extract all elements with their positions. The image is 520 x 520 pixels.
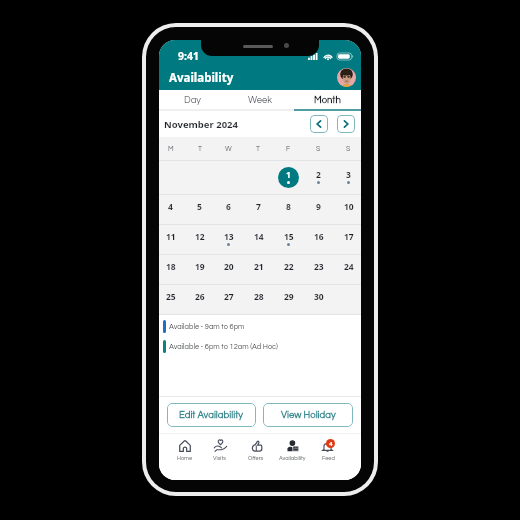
- button[interactable]: 19: [189, 259, 210, 280]
- staticText: 29: [284, 291, 294, 303]
- staticText: 3: [346, 169, 351, 181]
- staticText: 21: [254, 261, 264, 273]
- staticText: 15: [284, 231, 294, 243]
- staticText: 27: [224, 291, 234, 303]
- button[interactable]: 29: [278, 289, 299, 310]
- button[interactable]: 15: [278, 229, 299, 250]
- button[interactable]: Profile: [337, 68, 356, 87]
- button[interactable]: Available - 9am to 6pm: [159, 319, 361, 334]
- button[interactable]: Edit Availability: [167, 403, 256, 427]
- staticText: 28: [254, 291, 264, 303]
- button[interactable]: Month: [294, 90, 361, 109]
- button[interactable]: 2: [308, 167, 329, 188]
- button[interactable]: 12: [189, 229, 210, 250]
- button[interactable]: 25: [160, 289, 181, 310]
- staticText: Day: [184, 95, 202, 105]
- staticText: 9:41: [178, 49, 199, 63]
- staticText: M: [168, 145, 174, 152]
- button[interactable]: 22: [278, 259, 299, 280]
- staticText: Availability: [169, 70, 234, 86]
- button[interactable]: 26: [189, 289, 210, 310]
- button[interactable]: 9: [308, 199, 329, 220]
- button[interactable]: Next month: [337, 115, 355, 133]
- button[interactable]: 18: [160, 259, 181, 280]
- button[interactable]: Availability: [274, 434, 310, 480]
- button[interactable]: 4: [310, 434, 346, 480]
- button[interactable]: Visits: [202, 434, 238, 480]
- staticText: F: [286, 145, 291, 152]
- staticText: Available - 9am to 6pm: [169, 323, 245, 331]
- button[interactable]: 23: [308, 259, 329, 280]
- button[interactable]: 4: [160, 199, 181, 220]
- button[interactable]: 8: [278, 199, 299, 220]
- staticText: View Holiday: [281, 410, 336, 420]
- staticText: 1: [286, 169, 291, 181]
- button[interactable]: Available - 6pm to 12am (Ad Hoc): [159, 339, 361, 354]
- button[interactable]: 10: [338, 199, 359, 220]
- staticText: Offers: [248, 455, 264, 461]
- button[interactable]: 20: [218, 259, 239, 280]
- button[interactable]: 3: [338, 167, 359, 188]
- button[interactable]: 27: [218, 289, 239, 310]
- staticText: 20: [224, 261, 234, 273]
- staticText: 6: [226, 201, 231, 213]
- staticText: 12: [195, 231, 205, 243]
- button[interactable]: 13: [218, 229, 239, 250]
- button[interactable]: 17: [338, 229, 359, 250]
- button[interactable]: 5: [189, 199, 210, 220]
- staticText: Week: [248, 95, 273, 105]
- staticText: 5: [197, 201, 202, 213]
- staticText: 13: [224, 231, 234, 243]
- button[interactable]: 21: [248, 259, 269, 280]
- staticText: 7: [256, 201, 261, 213]
- staticText: S: [346, 145, 351, 152]
- staticText: 16: [314, 231, 324, 243]
- button[interactable]: 28: [248, 289, 269, 310]
- button[interactable]: 6: [218, 199, 239, 220]
- staticText: Availability: [279, 455, 306, 461]
- staticText: Available - 6pm to 12am (Ad Hoc): [169, 343, 278, 351]
- staticText: 10: [344, 201, 354, 213]
- staticText: S: [316, 145, 321, 152]
- staticText: Feed: [322, 455, 335, 461]
- button[interactable]: 1: [278, 167, 299, 188]
- staticText: 19: [195, 261, 205, 273]
- button[interactable]: 7: [248, 199, 269, 220]
- staticText: 2: [316, 169, 321, 181]
- button[interactable]: Offers: [238, 434, 274, 480]
- button[interactable]: 14: [248, 229, 269, 250]
- staticText: T: [198, 145, 202, 152]
- staticText: 4: [329, 440, 333, 448]
- staticText: 4: [168, 201, 173, 213]
- staticText: 26: [195, 291, 205, 303]
- staticText: 14: [254, 231, 264, 243]
- staticText: 23: [314, 261, 324, 273]
- staticText: Edit Availability: [179, 410, 244, 420]
- button[interactable]: 16: [308, 229, 329, 250]
- staticText: Month: [314, 95, 341, 105]
- staticText: Visits: [213, 455, 227, 461]
- button[interactable]: 11: [160, 229, 181, 250]
- staticText: 25: [166, 291, 176, 303]
- staticText: November 2024: [164, 118, 238, 131]
- button[interactable]: View Holiday: [263, 403, 353, 427]
- button[interactable]: Day: [159, 90, 227, 109]
- button[interactable]: Week: [227, 90, 294, 109]
- button[interactable]: 24: [338, 259, 359, 280]
- staticText: Home: [177, 455, 193, 461]
- button[interactable]: Home: [167, 434, 202, 480]
- staticText: 9: [316, 201, 321, 213]
- staticText: T: [256, 145, 260, 152]
- staticText: 18: [166, 261, 176, 273]
- staticText: 11: [166, 231, 176, 243]
- staticText: 17: [344, 231, 354, 243]
- button[interactable]: 30: [308, 289, 329, 310]
- staticText: 24: [344, 261, 354, 273]
- staticText: 30: [314, 291, 324, 303]
- staticText: W: [225, 145, 232, 152]
- staticText: 22: [284, 261, 294, 273]
- button[interactable]: Previous month: [310, 115, 328, 133]
- staticText: 8: [286, 201, 291, 213]
